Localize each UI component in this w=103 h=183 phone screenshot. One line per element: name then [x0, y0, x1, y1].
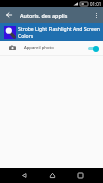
button[interactable]: Recent apps	[66, 168, 94, 183]
staticText: Appareil photo	[24, 45, 54, 51]
staticText: 01:01	[90, 1, 102, 7]
button[interactable]: Strobe Light Flashlight And Screen Color…	[0, 23, 103, 41]
button[interactable]: Back	[0, 7, 18, 23]
button[interactable]: Back	[10, 168, 38, 183]
staticText: Strobe Light Flashlight And Screen Color…	[18, 26, 103, 39]
button[interactable]: More options	[90, 7, 103, 23]
button[interactable]: Home	[38, 168, 66, 183]
staticText: Autoris. des applis	[20, 12, 68, 19]
button[interactable]: Appareil photo	[0, 41, 103, 55]
